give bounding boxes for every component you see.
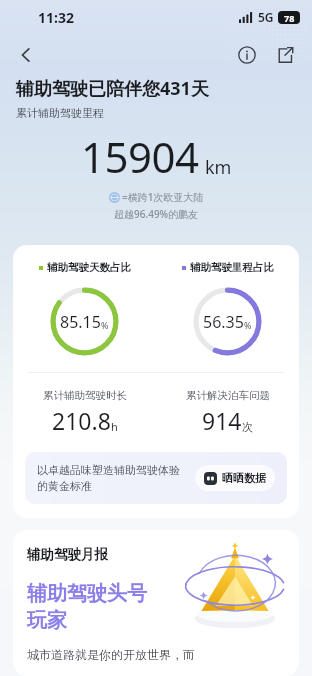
button[interactable]: Back bbox=[8, 37, 44, 73]
staticText: km bbox=[205, 155, 232, 180]
staticText: 累计辅助驾驶时长 bbox=[43, 389, 127, 402]
button[interactable]: 晒晒数据 bbox=[195, 465, 275, 491]
button[interactable]: Share bbox=[270, 40, 300, 70]
staticText: 辅助驾驶月报 bbox=[27, 546, 108, 563]
staticText: 210.8 bbox=[52, 405, 111, 436]
staticText: 11:32 bbox=[38, 8, 74, 27]
button[interactable]: 辅助驾驶月报 bbox=[13, 530, 299, 676]
staticText: 辅助驾驶已陪伴您431天 bbox=[16, 76, 209, 101]
staticText: 辅助驾驶天数占比 bbox=[47, 261, 131, 274]
staticText: 累计辅助驾驶里程 bbox=[16, 106, 104, 120]
staticText: 次 bbox=[242, 420, 253, 434]
staticText: % bbox=[101, 319, 109, 331]
staticText: =横跨1次欧亚大陆 bbox=[122, 190, 204, 204]
button[interactable]: Info bbox=[232, 40, 262, 70]
staticText: 85.15 bbox=[60, 311, 101, 333]
staticText: 辅助驾驶里程占比 bbox=[190, 261, 274, 274]
staticText: 累计解决泊车问题 bbox=[186, 389, 270, 402]
staticText: 晒晒数据 bbox=[222, 471, 266, 485]
staticText: h bbox=[111, 419, 118, 434]
staticText: 超越96.49%的鹏友 bbox=[114, 207, 199, 221]
staticText: 15904 bbox=[81, 128, 199, 185]
staticText: 5G bbox=[258, 9, 274, 25]
staticText: % bbox=[244, 319, 252, 331]
staticText: 914 bbox=[202, 405, 242, 436]
staticText: 城市道路就是你的开放世界，而 bbox=[27, 647, 195, 662]
staticText: 以卓越品味塑造辅助驾驶体验 的黄金标准 bbox=[37, 463, 189, 493]
staticText: 辅助驾驶头号 玩家 bbox=[27, 581, 147, 633]
staticText: 56.35 bbox=[203, 311, 244, 333]
staticText: 78 bbox=[284, 12, 295, 24]
